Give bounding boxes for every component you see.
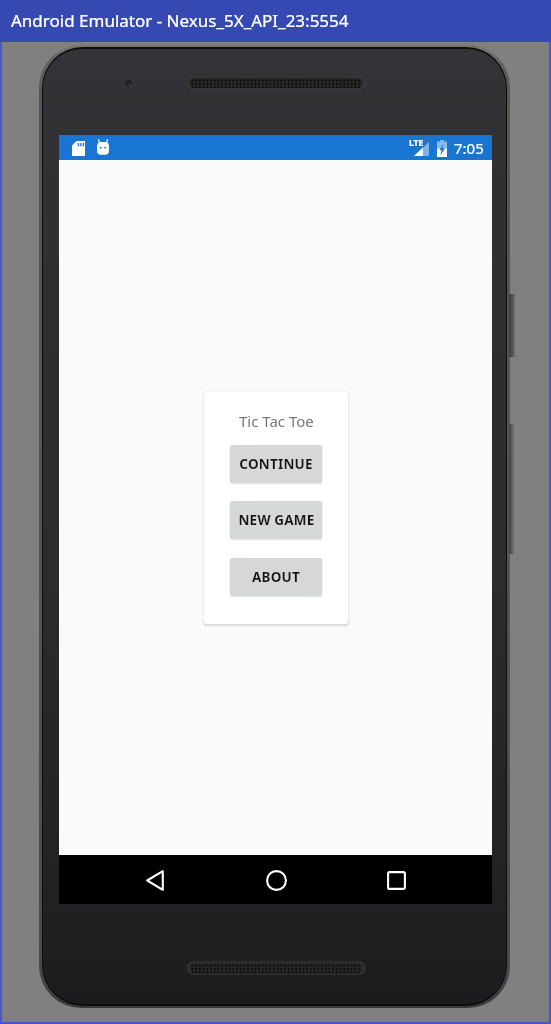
staticText: CONTINUE [239, 455, 313, 473]
button[interactable]: Home [252, 856, 300, 904]
button[interactable]: Recents [372, 856, 420, 904]
button[interactable]: Back [131, 856, 179, 904]
button[interactable]: NEW GAME [230, 501, 322, 539]
staticText: ABOUT [252, 568, 300, 586]
button[interactable]: ABOUT [230, 558, 322, 596]
button[interactable]: CONTINUE [230, 445, 322, 483]
staticText: Tic Tac Toe [239, 411, 314, 431]
staticText: LTE [409, 137, 424, 149]
staticText: NEW GAME [238, 511, 315, 529]
staticText: 7:05 [454, 138, 484, 158]
staticText: Android Emulator - Nexus_5X_API_23:5554 [11, 9, 349, 32]
